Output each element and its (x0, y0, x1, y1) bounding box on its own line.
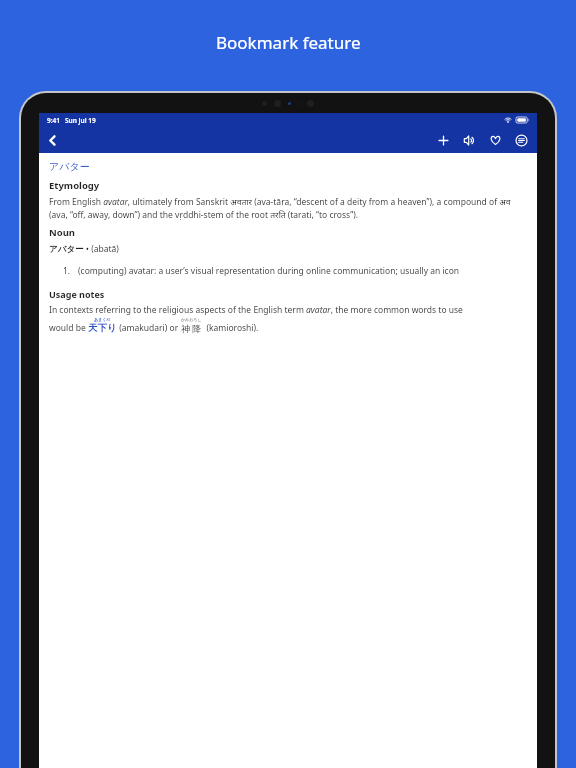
staticText: (computing) avatar: a user’s visual repr… (78, 265, 460, 277)
staticText: (kamioroshi). (202, 322, 259, 334)
staticText: アバター (49, 160, 90, 173)
staticText: あまくだ (94, 317, 111, 322)
button[interactable]: Back (39, 127, 65, 153)
staticText: In contexts referring to the religious a… (49, 304, 463, 316)
staticText: (amakudari) or (117, 322, 181, 334)
staticText: From English avatar, ultimately from San… (49, 196, 527, 221)
staticText: Bookmark feature (216, 31, 361, 54)
staticText: Sun Jul 19 (65, 116, 96, 125)
staticText: Usage notes (49, 288, 105, 300)
button[interactable]: Pronounce (456, 127, 482, 153)
staticText: 1. (63, 265, 71, 277)
button[interactable]: あまくだ (88, 317, 117, 334)
staticText: Etymology (49, 179, 100, 192)
button[interactable]: Menu (508, 127, 534, 153)
staticText: would be (49, 322, 88, 334)
staticText: かみおろし (181, 317, 202, 322)
staticText: アバター • (abatā) (49, 243, 119, 255)
button[interactable]: Bookmark (482, 127, 508, 153)
staticText: 天下り (88, 322, 117, 334)
staticText: 神 降 (181, 322, 202, 334)
staticText: 9:41 (47, 116, 60, 125)
button[interactable]: Add (430, 127, 456, 153)
staticText: Noun (49, 226, 76, 239)
